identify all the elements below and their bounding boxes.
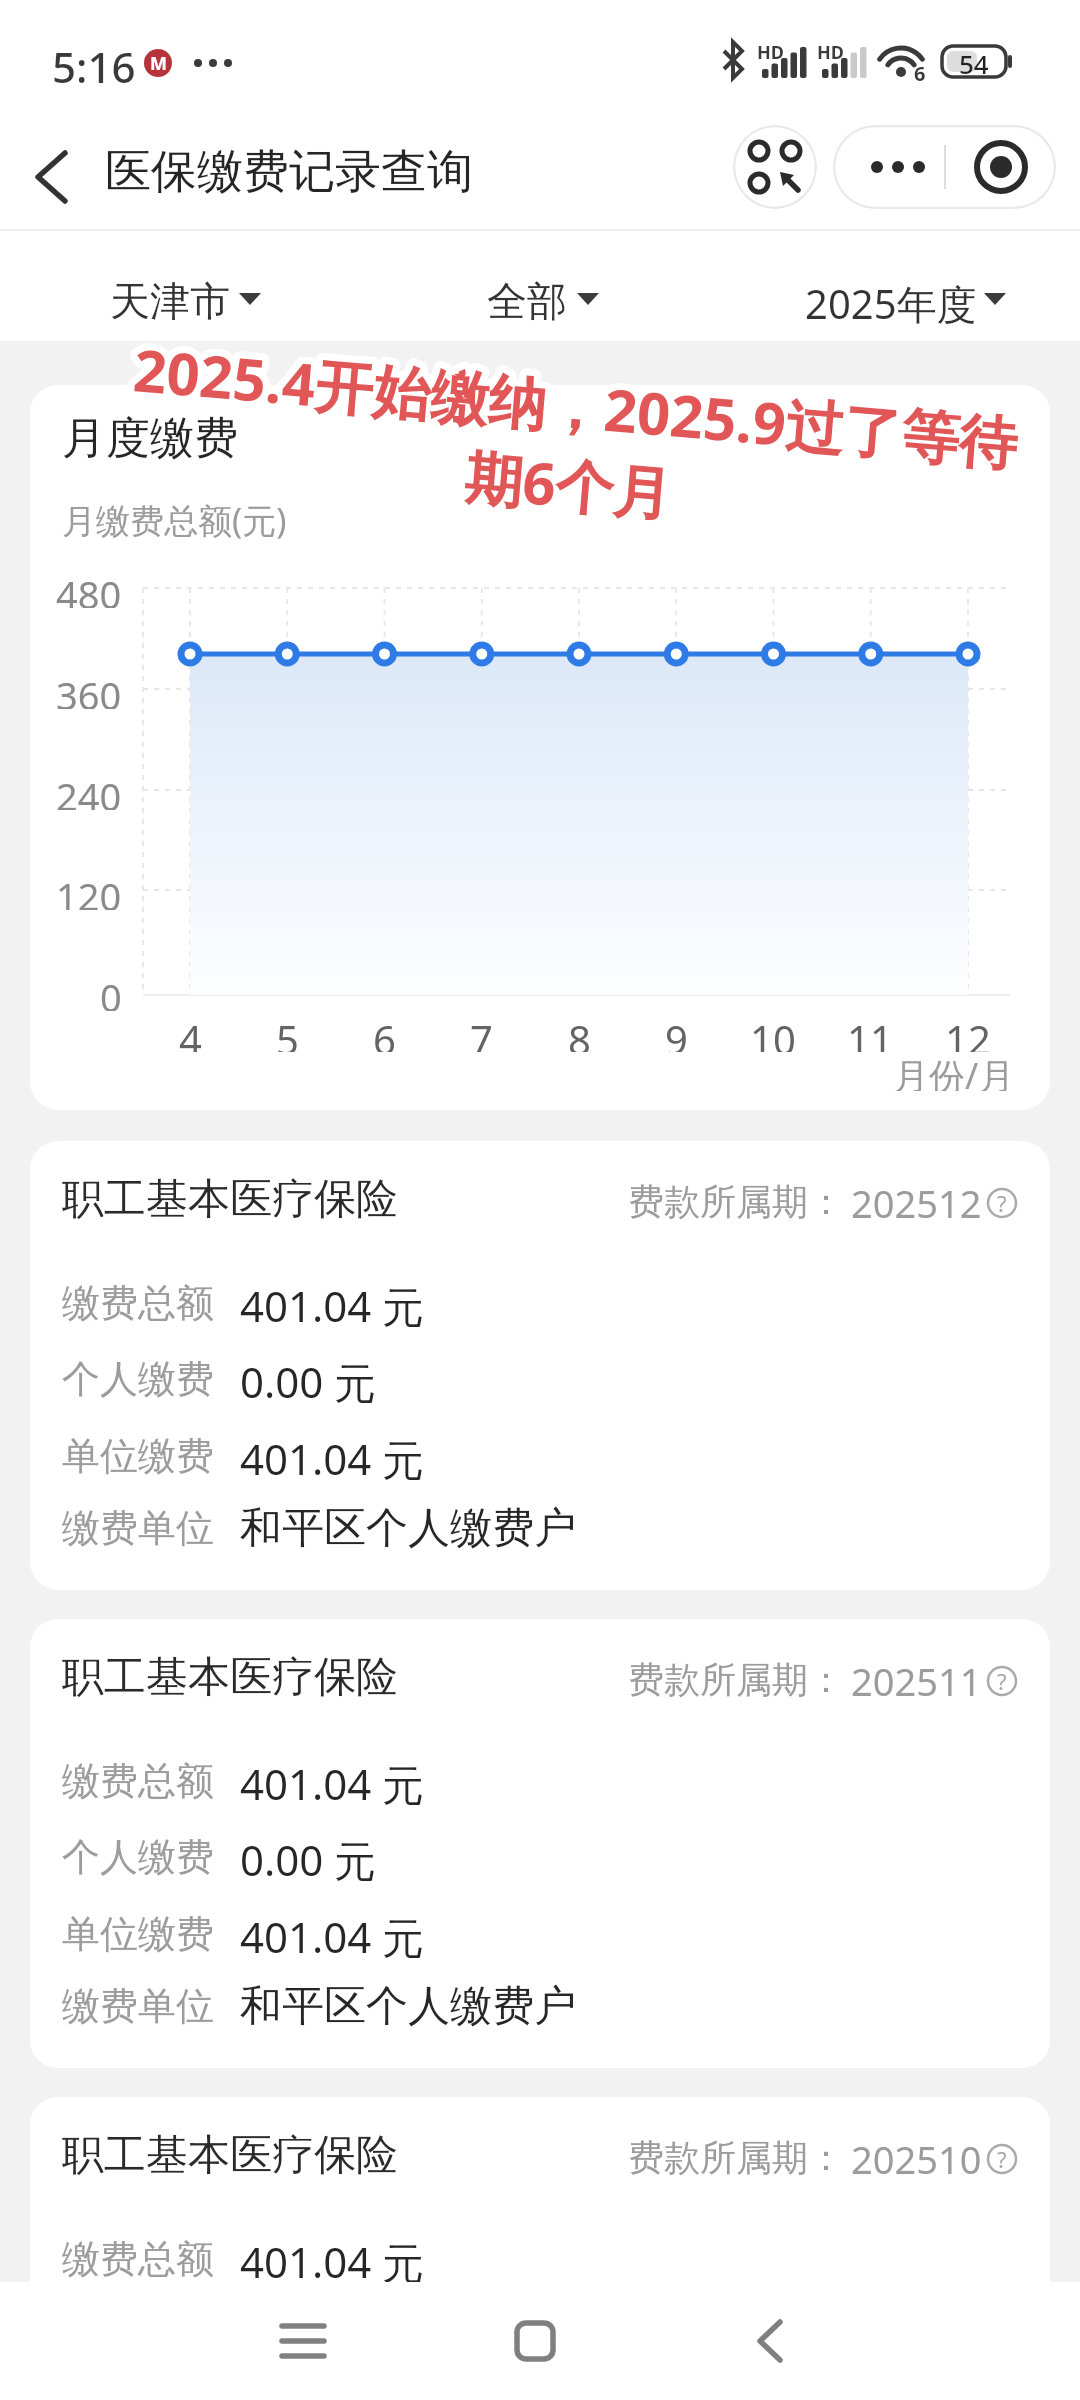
button[interactable] [719,2291,819,2391]
staticText: 缴费总额 [62,1279,214,1327]
staticText: 天津市 [110,276,230,326]
staticText: 单位缴费 [62,1432,214,1480]
staticText: 401.04 元 [240,1908,425,1965]
staticText: 职工基本医疗保险 [62,1651,398,1704]
staticText: 期6个月 [462,436,676,532]
staticText: ? [997,1188,1007,1218]
button[interactable] [20,140,80,200]
staticText: 费款所属期： [628,2135,844,2180]
staticText: 5 [276,1012,299,1052]
staticText: 缴费总额 [62,1757,214,1805]
staticText: HD [757,40,784,65]
staticText: 5:16 [52,38,136,95]
staticText: 12 [945,1012,991,1052]
staticText: 个人缴费 [62,1355,214,1403]
staticText: 缴费单位 [62,1982,214,2030]
button[interactable] [485,2291,585,2391]
staticText: 202510 [851,2133,982,2185]
staticText: 月缴费总额(元) [62,497,287,543]
staticText: 费款所属期： [628,1657,844,1702]
button[interactable]: 职工基本医疗保险 [30,1141,1050,1590]
staticText: 401.04 元 [240,1430,425,1487]
staticText: 120 [56,870,122,910]
staticText: 11 [847,1012,893,1052]
staticText: HD [817,40,844,65]
staticText: 2025年度 [805,276,977,331]
staticText: 480 [56,568,122,608]
staticText: 7 [470,1012,493,1052]
button[interactable]: 职工基本医疗保险 [30,1619,1050,2068]
staticText: 单位缴费 [62,1910,214,1958]
staticText: 职工基本医疗保险 [62,2129,398,2182]
staticText: ? [997,1666,1007,1696]
button[interactable] [780,240,1020,330]
staticText: 54 [959,46,989,77]
staticText: 和平区个人缴费户 [240,1980,576,2033]
staticText: 0 [100,971,122,1011]
staticText: 0.00 元 [240,1831,377,1888]
button[interactable] [80,240,290,330]
staticText: 401.04 元 [240,1277,425,1334]
button[interactable] [253,2291,353,2391]
staticText: 401.04 元 [240,2233,425,2290]
staticText: 2025.4开始缴纳，2025.9过了等待 [131,329,1021,482]
staticText: 和平区个人缴费户 [240,1502,576,1555]
staticText: 6 [914,60,926,84]
button[interactable] [833,125,944,209]
staticText: 月份/月 [893,1051,1015,1091]
staticText: 240 [56,770,122,810]
staticText: 360 [56,669,122,709]
staticText: 6 [373,1012,396,1052]
staticText: 4 [179,1012,202,1052]
button[interactable]: 职工基本医疗保险 [30,2097,1050,2400]
staticText: 202512 [851,1177,982,1229]
staticText: 费款所属期： [628,1179,844,1224]
staticText: 0.00 元 [240,1353,377,1410]
staticText: 期6个月 [462,436,676,532]
staticText: 缴费单位 [62,1504,214,1552]
staticText: M [150,51,167,76]
staticText: 202511 [851,1655,982,1707]
button[interactable] [450,240,630,330]
staticText: 月度缴费 [62,411,238,466]
staticText: ? [997,2144,1007,2174]
staticText: 职工基本医疗保险 [62,1173,398,1226]
staticText: 缴费总额 [62,2235,214,2283]
staticText: 401.04 元 [240,1755,425,1812]
staticText: 全部 [487,276,567,326]
staticText: 10 [750,1012,796,1052]
staticText: 9 [665,1012,688,1052]
button[interactable] [944,125,1056,209]
staticText: 8 [568,1012,591,1052]
button[interactable] [733,125,817,209]
staticText: 0.00 元 [240,2309,377,2366]
staticText: 个人缴费 [62,1833,214,1881]
staticText: 医保缴费记录查询 [105,143,473,201]
staticText: 2025.4开始缴纳，2025.9过了等待 [131,329,1021,482]
